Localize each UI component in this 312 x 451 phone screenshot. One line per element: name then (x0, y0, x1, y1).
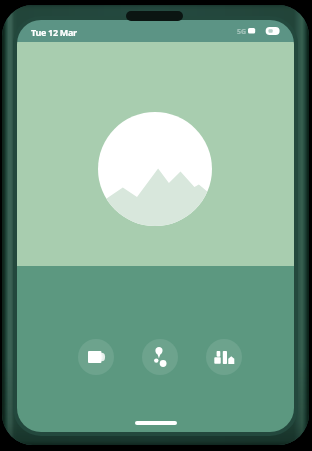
staticText: Tue 12 Mar (31, 26, 77, 38)
button[interactable]: Statistics (206, 339, 242, 375)
staticText: 5G (237, 27, 247, 37)
button[interactable]: Wallet (78, 339, 114, 375)
button[interactable]: Location (142, 339, 178, 375)
